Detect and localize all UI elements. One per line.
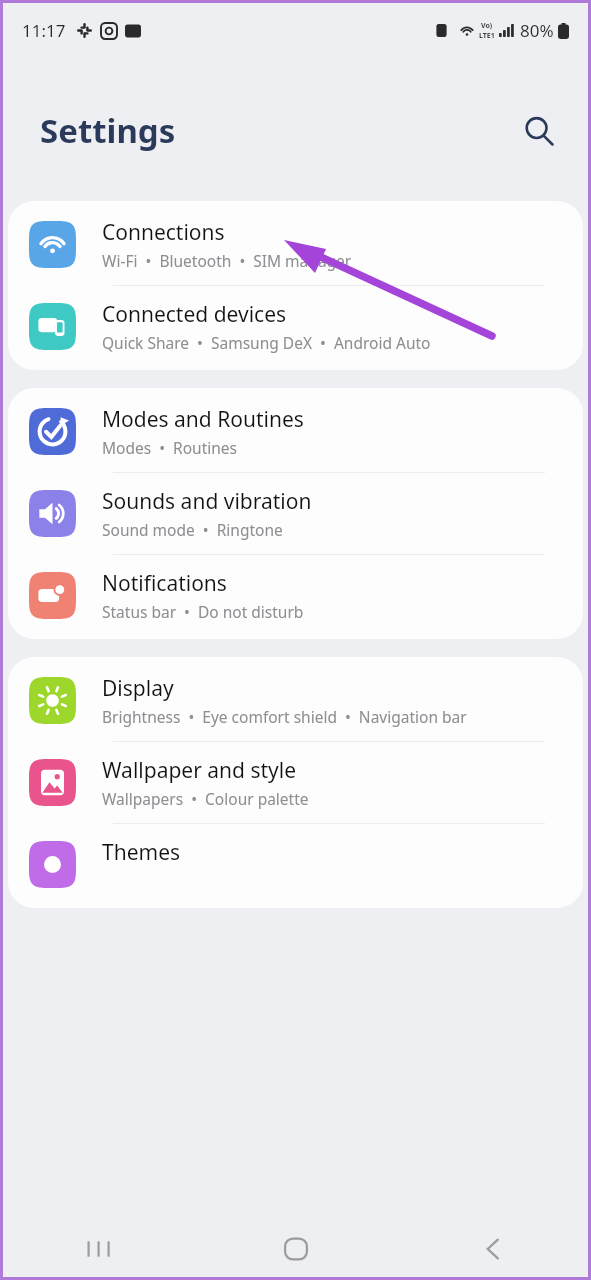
button[interactable]: Search — [515, 107, 563, 155]
button[interactable]: Recent apps — [0, 1218, 197, 1280]
button[interactable]: Wallpaper and style — [8, 742, 583, 824]
button[interactable]: Connections — [8, 204, 583, 286]
staticText: Status bar • Do not disturb — [102, 601, 304, 622]
staticText: Connected devices — [102, 300, 287, 329]
button[interactable]: Themes — [8, 824, 583, 905]
button[interactable]: Display — [8, 660, 583, 742]
button[interactable]: Home — [197, 1218, 394, 1280]
staticText: Display — [102, 674, 174, 703]
staticText: Modes and Routines — [102, 405, 304, 434]
button[interactable]: Connected devices — [8, 286, 583, 367]
staticText: LTE1 — [479, 31, 495, 41]
staticText: 11:17 — [22, 19, 66, 42]
staticText: Settings — [40, 108, 176, 153]
staticText: Quick Share • Samsung DeX • Android Auto — [102, 332, 431, 353]
staticText: Sound mode • Ringtone — [102, 519, 283, 540]
button[interactable]: Notifications — [8, 555, 583, 636]
button[interactable]: Sounds and vibration — [8, 473, 583, 555]
staticText: 80% — [520, 19, 554, 42]
staticText: Notifications — [102, 569, 227, 598]
staticText: Wallpaper and style — [102, 756, 297, 785]
button[interactable]: Modes and Routines — [8, 391, 583, 473]
staticText: Vo) — [481, 21, 493, 31]
staticText: Brightness • Eye comfort shield • Naviga… — [102, 706, 467, 727]
staticText: Wallpapers • Colour palette — [102, 788, 309, 809]
staticText: Wi-Fi • Bluetooth • SIM manager — [102, 250, 352, 271]
staticText: Connections — [102, 218, 225, 247]
staticText: Modes • Routines — [102, 437, 238, 458]
button[interactable]: Back — [394, 1218, 591, 1280]
staticText: Sounds and vibration — [102, 487, 312, 516]
staticText: Themes — [102, 838, 181, 867]
